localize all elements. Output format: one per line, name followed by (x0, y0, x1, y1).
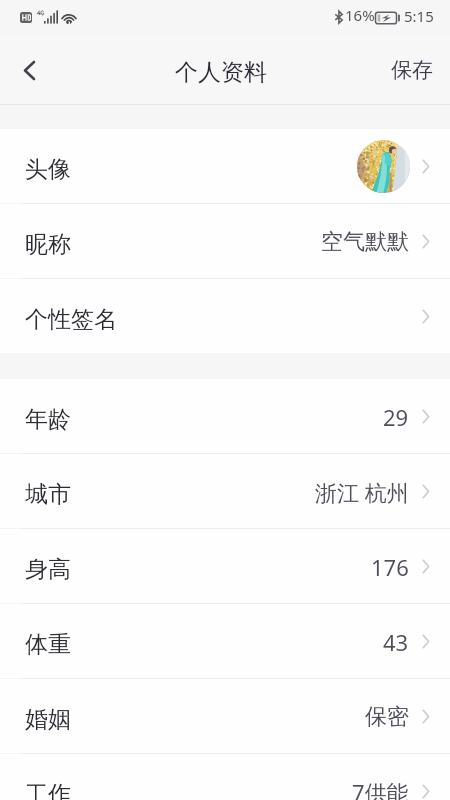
button[interactable]: 个性签名 (0, 279, 450, 353)
staticText: 昵称 (25, 230, 71, 259)
staticText: 浙江 杭州 (315, 477, 409, 507)
button[interactable]: 工作 (0, 754, 450, 800)
button[interactable]: 年龄 (0, 379, 450, 453)
staticText: 年龄 (25, 405, 71, 434)
staticText: 婚姻 (25, 705, 71, 734)
staticText: 头像 (25, 155, 71, 184)
staticText: 体重 (25, 630, 71, 659)
button[interactable]: 城市 (0, 454, 450, 528)
staticText: 43 (383, 627, 409, 657)
button[interactable]: Back (0, 36, 58, 104)
staticText: 工作 (25, 780, 71, 800)
staticText: 5:15 (404, 6, 434, 26)
staticText: 29 (383, 402, 409, 432)
staticText: 个性签名 (25, 305, 117, 334)
staticText: 7供能 (352, 777, 409, 800)
button[interactable]: 体重 (0, 604, 450, 678)
button[interactable]: 身高 (0, 529, 450, 603)
staticText: 16% (345, 5, 375, 25)
staticText: 个人资料 (175, 58, 267, 87)
staticText: 保密 (365, 703, 409, 731)
staticText: 城市 (25, 480, 71, 509)
staticText: 保存 (391, 57, 433, 83)
staticText: 空气默默 (321, 228, 409, 256)
staticText: 176 (371, 552, 409, 582)
button[interactable]: 头像 (0, 129, 450, 203)
button[interactable]: 保存 (369, 36, 450, 104)
staticText: 身高 (25, 555, 71, 584)
button[interactable]: 昵称 (0, 204, 450, 278)
button[interactable]: 婚姻 (0, 679, 450, 753)
